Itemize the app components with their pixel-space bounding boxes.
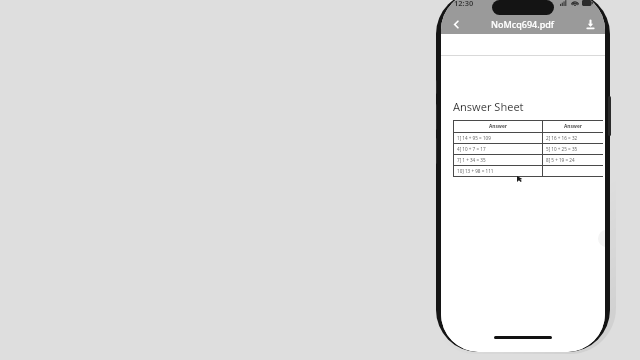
staticText: 7] 1 + 34 = 35: [457, 157, 486, 163]
staticText: NoMcq694.pdf: [491, 18, 555, 30]
button[interactable]: Page number: [598, 230, 605, 247]
button[interactable]: Download: [580, 14, 600, 34]
staticText: 2] 16 + 16 = 32: [546, 135, 578, 141]
button[interactable]: Back: [446, 14, 466, 34]
staticText: Answer Sheet: [453, 99, 524, 114]
staticText: 8] 5 + 19 = 24: [546, 157, 575, 163]
staticText: 12:30: [454, 0, 474, 8]
staticText: Answer: [564, 123, 582, 130]
staticText: 1] 14 + 95 = 109: [457, 135, 491, 141]
staticText: 5] 10 + 25 = 35: [546, 146, 578, 152]
staticText: 10] 13 + 98 = 111: [457, 168, 494, 174]
staticText: 4] 10 + 7 = 17: [457, 146, 486, 152]
staticText: Answer: [489, 123, 507, 130]
